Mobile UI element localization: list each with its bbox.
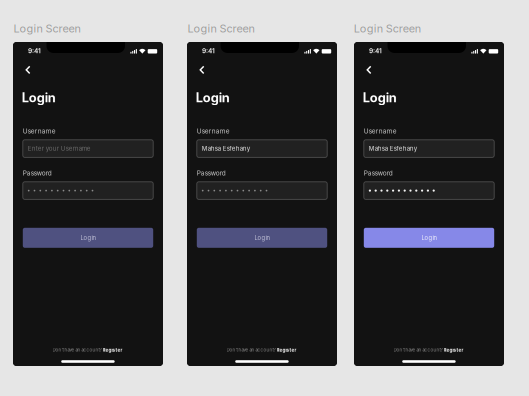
- staticText: 9:41: [28, 47, 41, 55]
- button[interactable]: Back: [363, 62, 379, 78]
- staticText: Mahsa Esfehany: [369, 145, 417, 152]
- button[interactable]: Login: [23, 228, 153, 248]
- button[interactable]: Login: [197, 228, 327, 248]
- staticText: Register: [276, 347, 296, 353]
- button[interactable]: Don't have an account?: [42, 346, 132, 354]
- staticText: Login: [254, 234, 269, 241]
- staticText: Login: [22, 90, 56, 105]
- staticText: Don't have an account?: [226, 347, 276, 353]
- button[interactable]: Don't have an account?: [216, 346, 306, 354]
- staticText: Login Screen: [354, 22, 421, 35]
- staticText: Enter your Username: [28, 145, 91, 152]
- staticText: Mahsa Esfehany: [202, 145, 250, 152]
- staticText: Register: [102, 347, 122, 353]
- staticText: 9:41: [369, 47, 382, 55]
- staticText: Login Screen: [187, 22, 254, 35]
- staticText: 9:41: [202, 47, 215, 55]
- staticText: Login: [363, 90, 397, 105]
- staticText: Login Screen: [13, 22, 80, 35]
- staticText: Password: [23, 169, 52, 177]
- staticText: Username: [364, 127, 397, 135]
- staticText: Don't have an account?: [52, 347, 102, 353]
- staticText: Username: [23, 127, 56, 135]
- button[interactable]: Login: [364, 228, 494, 248]
- staticText: Login: [196, 90, 230, 105]
- staticText: Username: [197, 127, 230, 135]
- staticText: Don't have an account?: [393, 347, 443, 353]
- staticText: Login: [80, 234, 95, 241]
- button[interactable]: Back: [196, 62, 212, 78]
- button[interactable]: Don't have an account?: [383, 346, 473, 354]
- button[interactable]: Back: [22, 62, 38, 78]
- staticText: Register: [443, 347, 463, 353]
- staticText: Login: [421, 234, 436, 241]
- staticText: Password: [364, 169, 393, 177]
- staticText: Password: [197, 169, 226, 177]
